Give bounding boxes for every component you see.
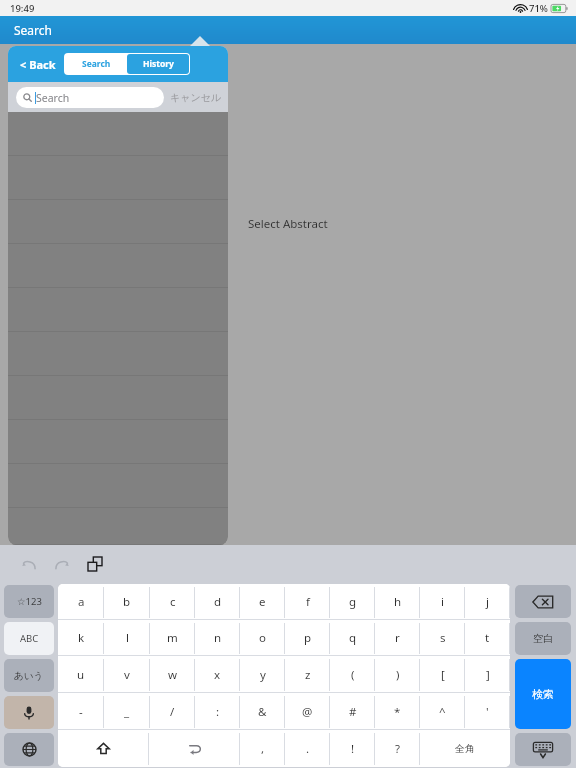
button[interactable]: Dictate [4, 696, 54, 729]
button[interactable]: p [285, 620, 330, 656]
button[interactable] [149, 730, 240, 767]
button[interactable]: ( [330, 656, 375, 693]
button[interactable]: . [285, 730, 330, 767]
staticText: a [78, 594, 85, 610]
button[interactable]: [ [420, 656, 465, 693]
button[interactable]: b [104, 584, 150, 620]
button[interactable]: u [58, 656, 104, 693]
button[interactable]: Search [16, 87, 164, 108]
button[interactable]: キャンセル [170, 91, 222, 104]
button[interactable]: f [285, 584, 330, 620]
button[interactable]: i [420, 584, 465, 620]
button[interactable]: 検索 [515, 659, 571, 729]
staticText: k [78, 630, 85, 646]
button[interactable]: ' [465, 693, 510, 730]
button[interactable]: x [195, 656, 240, 693]
button[interactable]: Search [0, 16, 576, 44]
button[interactable]: 全角 [420, 730, 510, 767]
button[interactable]: 空白 [515, 622, 571, 655]
button[interactable]: History [127, 54, 189, 74]
button[interactable]: o [240, 620, 285, 656]
staticText: z [305, 667, 311, 683]
button[interactable]: _ [104, 693, 150, 730]
button[interactable]: y [240, 656, 285, 693]
staticText: y [260, 667, 266, 683]
button[interactable]: j [465, 584, 510, 620]
button[interactable]: Delete [515, 585, 571, 618]
staticText: / [170, 704, 175, 720]
staticText: u [77, 667, 85, 683]
staticText: & [258, 704, 267, 720]
staticText: e [259, 594, 266, 610]
button[interactable]: < Back [20, 57, 56, 72]
staticText: i [441, 594, 444, 610]
button[interactable]: Undo [14, 549, 44, 579]
button[interactable]: m [150, 620, 195, 656]
staticText: q [349, 630, 357, 646]
button[interactable]: n [195, 620, 240, 656]
staticText: o [259, 630, 266, 646]
button[interactable]: : [195, 693, 240, 730]
button[interactable]: v [104, 656, 150, 693]
button[interactable]: e [240, 584, 285, 620]
staticText: l [126, 630, 129, 646]
staticText: 71% [529, 2, 548, 15]
button[interactable]: Change keyboard [4, 733, 54, 766]
staticText: @ [302, 704, 313, 720]
button[interactable]: ☆123 [4, 585, 54, 618]
button[interactable]: r [375, 620, 420, 656]
button[interactable]: t [465, 620, 510, 656]
button[interactable]: ! [330, 730, 375, 767]
staticText: c [170, 594, 176, 610]
button[interactable]: # [330, 693, 375, 730]
staticText: _ [124, 704, 130, 720]
staticText: b [123, 594, 131, 610]
button[interactable]: w [150, 656, 195, 693]
staticText: あいう [14, 670, 44, 682]
button[interactable]: s [420, 620, 465, 656]
button[interactable]: k [58, 620, 104, 656]
staticText: x [214, 667, 221, 683]
button[interactable]: Hide keyboard [515, 733, 571, 766]
button[interactable]: a [58, 584, 104, 620]
button[interactable]: ^ [420, 693, 465, 730]
staticText: ] [486, 667, 490, 683]
button[interactable]: q [330, 620, 375, 656]
button[interactable]: ? [375, 730, 420, 767]
staticText: Search [14, 22, 52, 38]
button[interactable]: l [104, 620, 150, 656]
button[interactable]: Search [65, 54, 127, 74]
button[interactable]: @ [285, 693, 330, 730]
button[interactable]: d [195, 584, 240, 620]
staticText: - [79, 704, 83, 720]
button[interactable] [58, 730, 149, 767]
button[interactable]: ) [375, 656, 420, 693]
button[interactable]: ABC [4, 622, 54, 655]
button[interactable]: あいう [4, 659, 54, 692]
button[interactable]: ] [465, 656, 510, 693]
button[interactable]: h [375, 584, 420, 620]
button[interactable]: , [240, 730, 285, 767]
button[interactable]: - [58, 693, 104, 730]
button[interactable]: Paste [80, 549, 110, 579]
button[interactable]: Redo [47, 549, 77, 579]
button[interactable]: * [375, 693, 420, 730]
button[interactable]: / [150, 693, 195, 730]
staticText: p [304, 630, 312, 646]
button[interactable]: g [330, 584, 375, 620]
button[interactable]: z [285, 656, 330, 693]
button[interactable]: & [240, 693, 285, 730]
staticText: ^ [439, 704, 446, 720]
staticText: * [394, 704, 401, 720]
button[interactable]: c [150, 584, 195, 620]
